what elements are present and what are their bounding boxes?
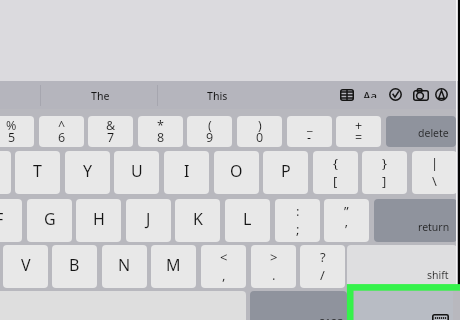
staticText: 0 — [256, 129, 264, 146]
button[interactable]: _ — [287, 116, 332, 147]
button[interactable]: ?123 — [250, 291, 347, 320]
staticText: L — [243, 208, 252, 230]
button[interactable]: { — [313, 151, 358, 194]
staticText: ” — [344, 202, 349, 220]
staticText: 9 — [206, 129, 214, 146]
staticText: - — [307, 129, 312, 146]
button[interactable]: ” — [324, 199, 369, 242]
button[interactable]: ) — [237, 116, 282, 147]
button[interactable]: T — [15, 151, 60, 194]
button[interactable]: > — [251, 245, 296, 288]
button[interactable]: & — [88, 116, 133, 147]
staticText: , — [222, 266, 226, 284]
staticText: P — [281, 160, 291, 182]
button[interactable]: V — [3, 245, 48, 288]
button[interactable]: % — [0, 116, 34, 147]
staticText: ? — [320, 248, 326, 266]
staticText: G — [44, 208, 56, 230]
staticText: ; — [296, 220, 300, 238]
staticText: shift — [427, 268, 449, 282]
button[interactable]: Draw — [435, 88, 448, 101]
staticText: ( — [208, 117, 212, 134]
staticText: H — [93, 208, 105, 230]
staticText: Aa — [363, 88, 378, 98]
staticText: = — [355, 129, 363, 146]
staticText: 6 — [58, 129, 66, 146]
button[interactable]: H — [76, 199, 121, 242]
staticText: & — [106, 117, 116, 134]
staticText: _ — [307, 117, 313, 134]
button[interactable]: R — [0, 151, 11, 194]
button[interactable]: Hide keyboard — [354, 291, 453, 320]
button[interactable]: L — [225, 199, 270, 242]
button[interactable]: J — [126, 199, 171, 242]
staticText: < — [220, 248, 228, 266]
button[interactable]: I — [164, 151, 209, 194]
button[interactable]: ( — [187, 116, 232, 147]
button[interactable]: N — [102, 245, 147, 288]
button[interactable]: B — [52, 245, 97, 288]
button[interactable]: Insert table — [340, 89, 354, 101]
staticText: This — [207, 89, 228, 103]
staticText: % — [6, 117, 17, 134]
staticText: | — [431, 154, 439, 172]
staticText: . — [272, 266, 276, 284]
button[interactable]: G — [27, 199, 72, 242]
staticText: > — [270, 248, 278, 266]
button[interactable]: } — [362, 151, 407, 194]
staticText: { — [333, 154, 338, 172]
staticText: } — [382, 154, 387, 172]
button[interactable]: Y — [65, 151, 110, 194]
staticText: [ — [333, 172, 338, 190]
button[interactable]: The — [70, 82, 130, 108]
staticText: 5 — [8, 129, 16, 146]
button[interactable]: return — [374, 199, 457, 242]
staticText: U — [131, 160, 143, 182]
button[interactable]: Mark complete — [389, 88, 402, 101]
button[interactable]: ^ — [39, 116, 84, 147]
button[interactable]: < — [201, 245, 246, 288]
button[interactable]: ? — [300, 245, 345, 288]
staticText: T — [33, 160, 42, 182]
button[interactable]: Camera — [413, 88, 429, 101]
button[interactable]: K — [175, 199, 220, 242]
staticText: J — [146, 208, 151, 230]
staticText: K — [193, 208, 203, 230]
button[interactable]: P — [263, 151, 308, 194]
staticText: return — [418, 220, 450, 234]
button[interactable]: F — [0, 199, 22, 242]
staticText: ) — [258, 117, 262, 134]
staticText: B — [69, 254, 80, 276]
staticText: 8 — [157, 129, 165, 146]
staticText: / — [320, 266, 325, 284]
staticText: M — [166, 254, 181, 276]
staticText: F — [0, 208, 4, 230]
staticText: delete — [418, 126, 449, 140]
button[interactable]: | — [412, 151, 457, 194]
staticText: V — [21, 254, 31, 276]
staticText: ^ — [58, 117, 66, 134]
button[interactable]: + — [336, 116, 381, 147]
button[interactable]: delete — [386, 116, 456, 147]
staticText: 7 — [107, 129, 115, 146]
button[interactable]: shift — [347, 245, 457, 288]
staticText: : — [296, 202, 300, 220]
button[interactable]: M — [151, 245, 196, 288]
button[interactable]: * — [138, 116, 183, 147]
button[interactable]: Text format — [363, 90, 382, 100]
staticText: I — [184, 160, 190, 182]
button[interactable]: This — [187, 82, 247, 108]
staticText: + — [355, 117, 363, 134]
button[interactable]: : — [275, 199, 320, 242]
staticText: * — [157, 117, 164, 134]
staticText: ’ — [345, 220, 348, 238]
button[interactable]: O — [214, 151, 259, 194]
staticText: ] — [382, 172, 387, 190]
button[interactable]: U — [114, 151, 159, 194]
staticText: O — [230, 160, 243, 182]
staticText: The — [91, 89, 110, 103]
staticText: \ — [432, 172, 437, 190]
staticText: ?123 — [320, 315, 344, 320]
staticText: Y — [83, 160, 93, 182]
